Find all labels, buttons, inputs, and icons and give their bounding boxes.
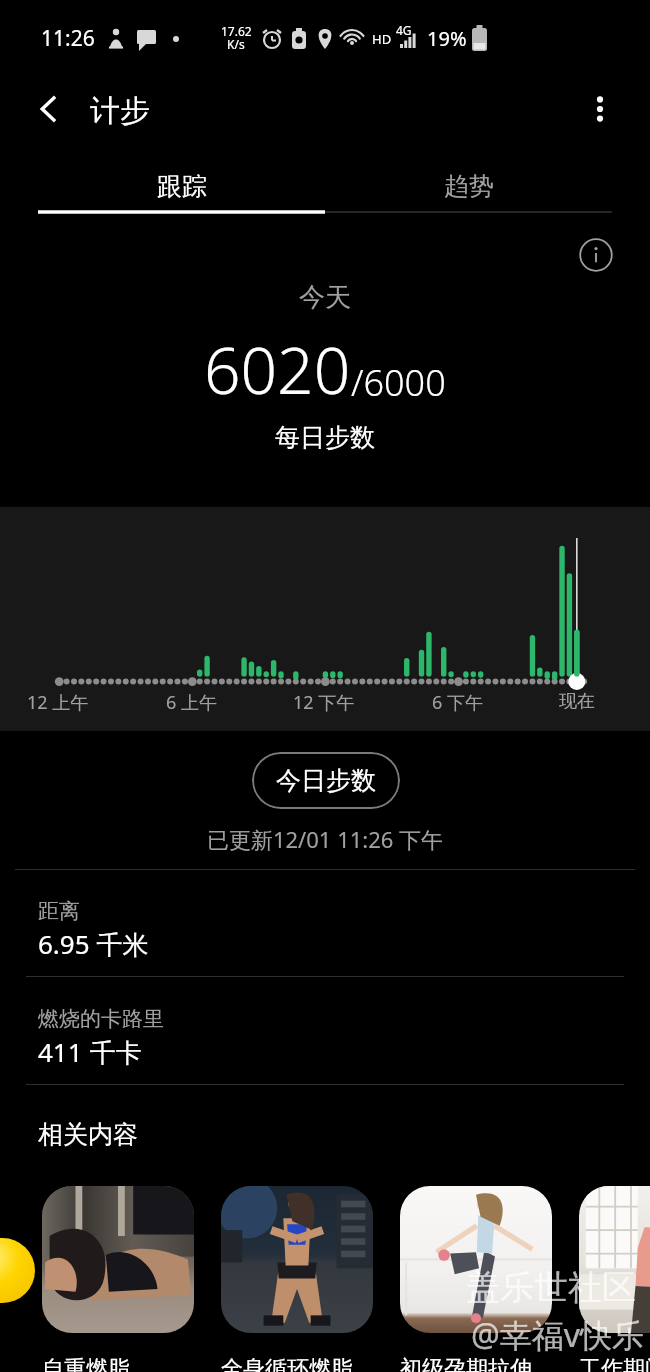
staticText: 相关内容 [38, 1119, 138, 1150]
button[interactable]: 跟踪 [38, 157, 325, 215]
staticText: 今日步数 [276, 765, 376, 796]
button[interactable]: 今日步数 [252, 752, 400, 809]
button[interactable]: 趋势 [325, 157, 612, 215]
button[interactable]: 自重燃脂 [42, 1186, 194, 1372]
button[interactable]: 初级孕期拉伸 [400, 1186, 552, 1372]
staticText: 6020 [204, 326, 351, 413]
staticText: 每日步数 [0, 422, 650, 453]
staticText: 工作期间 [579, 1355, 650, 1372]
staticText: HD [372, 30, 392, 48]
staticText: 距离 [38, 898, 80, 924]
staticText: 12 下午 [293, 690, 355, 715]
staticText: 17.62 [221, 23, 252, 39]
staticText: 6.95 千米 [38, 926, 149, 962]
staticText: /6000 [351, 358, 446, 407]
button[interactable]: 距离 [0, 890, 650, 976]
staticText: 今天 [0, 281, 650, 314]
staticText: 已更新12/01 11:26 下午 [0, 824, 650, 854]
staticText: 4G [396, 22, 412, 38]
button[interactable]: 工作期间 [579, 1186, 650, 1372]
staticText: 6 上午 [166, 690, 217, 715]
staticText: 自重燃脂 [42, 1355, 130, 1372]
staticText: 初级孕期拉伸 [400, 1355, 532, 1372]
staticText: 12 上午 [27, 690, 89, 715]
staticText: 411 千卡 [38, 1034, 142, 1070]
staticText: 燃烧的卡路里 [38, 1006, 164, 1032]
staticText: 盖乐世社区 [466, 1266, 636, 1309]
staticText: @幸福v快乐 [471, 1313, 645, 1357]
button[interactable]: More options [575, 84, 625, 134]
staticText: 19% [427, 25, 467, 52]
button[interactable]: 燃烧的卡路里 [0, 998, 650, 1084]
staticText: 现在 [559, 690, 595, 713]
button[interactable]: Information [572, 231, 620, 279]
button[interactable]: 全身循环燃脂 [221, 1186, 373, 1372]
staticText: 全身循环燃脂 [221, 1355, 353, 1372]
staticText: 6 下午 [432, 690, 483, 715]
staticText: 跟踪 [157, 171, 207, 202]
staticText: 趋势 [444, 171, 494, 202]
staticText: 11:26 [41, 24, 95, 53]
staticText: K/s [227, 36, 245, 52]
staticText: 计步 [90, 92, 150, 130]
button[interactable]: Back [24, 84, 74, 134]
